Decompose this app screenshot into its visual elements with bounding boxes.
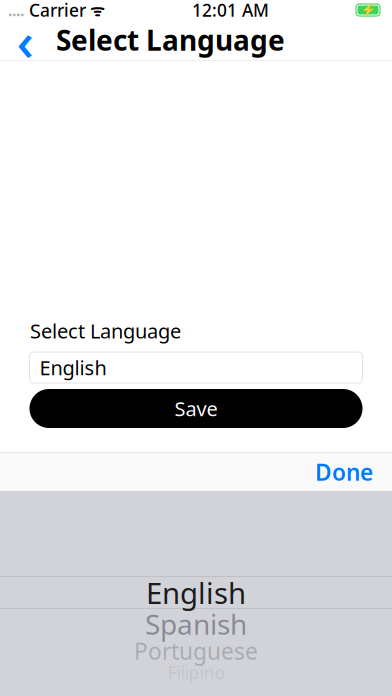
staticText: Filipino (167, 661, 224, 684)
staticText: .... (8, 0, 24, 21)
staticText: ᯤ (86, 0, 105, 21)
button[interactable]: English (29, 352, 362, 383)
staticText: ⚡ (360, 3, 375, 17)
staticText: Done (315, 457, 373, 487)
button[interactable]: Back (8, 20, 42, 60)
staticText: Portuguese (134, 636, 258, 666)
button[interactable]: Done (305, 451, 383, 493)
staticText: Select Language (30, 317, 181, 344)
staticText: ‹ (16, 5, 33, 75)
staticText: Carrier (24, 0, 86, 21)
staticText: 12:01 AM (192, 0, 269, 21)
staticText: Save (174, 395, 217, 422)
staticText: Select Language (56, 21, 285, 59)
button[interactable]: Save (29, 389, 362, 428)
staticText: English (146, 573, 246, 612)
staticText: Spanish (145, 605, 247, 643)
staticText: English (39, 354, 106, 381)
